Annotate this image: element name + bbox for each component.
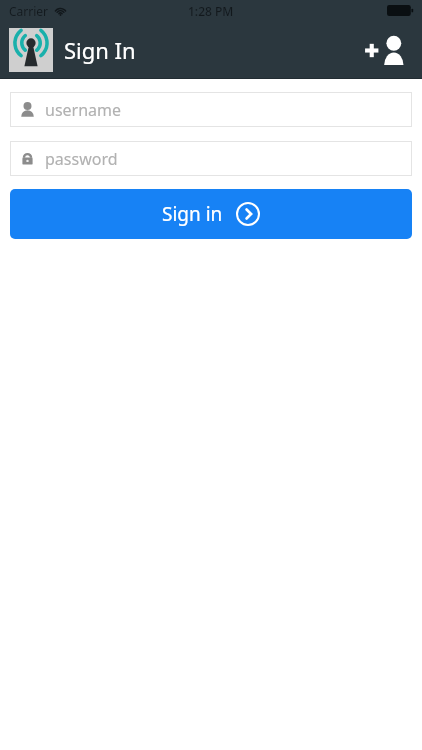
button[interactable]: Add user [358,22,414,78]
staticText: 1:28 PM [188,3,234,19]
button[interactable]: Sign in [10,189,412,239]
staticText: password [45,148,118,170]
staticText: username [45,99,122,121]
button[interactable]: username [10,92,412,127]
staticText: Sign In [64,35,136,65]
button[interactable]: App icon [9,28,53,72]
staticText: Sign in [162,201,223,227]
button[interactable]: password [10,141,412,176]
staticText: Carrier [9,3,49,19]
